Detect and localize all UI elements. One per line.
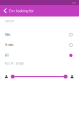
staticText: Age 18 - 50 years xyxy=(5,62,24,65)
staticText: All xyxy=(5,54,9,57)
staticText: Female xyxy=(5,43,14,47)
staticText: 9:41 xyxy=(72,1,76,4)
button[interactable]: Back xyxy=(1,5,9,16)
button[interactable]: All xyxy=(0,50,79,61)
button[interactable]: Male xyxy=(0,29,79,40)
staticText: Male xyxy=(5,33,11,36)
button[interactable]: Female xyxy=(0,40,79,50)
staticText: I'm looking for xyxy=(9,8,34,13)
staticText: Gender xyxy=(5,20,14,23)
button[interactable]: Age range xyxy=(0,71,79,82)
